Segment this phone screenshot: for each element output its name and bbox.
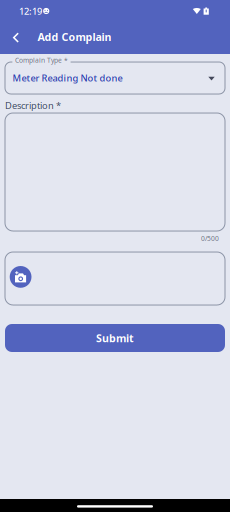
button[interactable]: Meter Reading Not done <box>5 62 225 94</box>
staticText: Add Complain <box>38 30 112 44</box>
button[interactable]: Submit <box>5 324 225 352</box>
staticText: Meter Reading Not done <box>12 72 122 84</box>
staticText: Complain Type * <box>15 56 68 65</box>
button[interactable]: Add photo <box>10 266 31 288</box>
staticText: Submit <box>96 331 134 345</box>
button[interactable]: Back <box>3 24 29 50</box>
staticText: 12:19 <box>19 5 42 17</box>
staticText: Description * <box>5 99 61 112</box>
staticText: 0/500 <box>201 234 219 243</box>
